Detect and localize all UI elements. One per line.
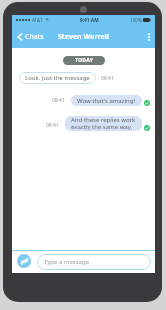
staticText: 09:41 — [101, 75, 114, 82]
staticText: 09:41 — [46, 122, 59, 129]
staticText: Chats — [25, 32, 44, 42]
button[interactable]: And these replies work exactly the same … — [65, 116, 142, 131]
staticText: Look. Just the message — [25, 74, 90, 82]
button[interactable]: Attach file — [17, 254, 31, 268]
staticText: Type a message — [44, 258, 90, 266]
staticText: 100% — [130, 17, 142, 23]
button[interactable]: Type a message — [37, 254, 151, 270]
staticText: And these replies work exactly the same … — [71, 116, 136, 131]
button[interactable]: TODAY — [63, 56, 105, 65]
button[interactable]: Look. Just the message — [19, 72, 96, 84]
staticText: TODAY — [75, 57, 94, 64]
button[interactable]: Wow that's amazing! — [71, 95, 142, 106]
staticText: Steven Worrell — [58, 32, 109, 42]
button[interactable]: Chats — [12, 29, 48, 45]
staticText: 09:41 — [52, 97, 65, 104]
staticText: Wow that's amazing! — [77, 97, 136, 105]
button[interactable]: More options — [143, 30, 155, 44]
staticText: AT&T — [32, 17, 43, 23]
staticText: 9:41 AM — [80, 17, 99, 24]
